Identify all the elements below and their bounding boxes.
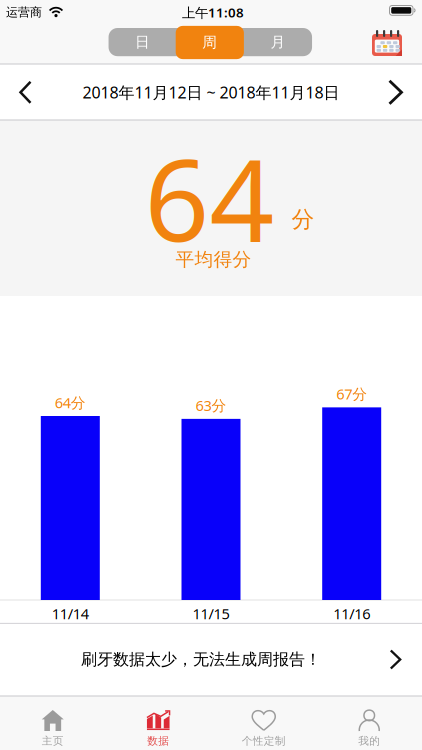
staticText: 周 — [202, 33, 217, 51]
button[interactable]: 日 — [109, 28, 176, 56]
staticText: 月 — [270, 33, 285, 51]
staticText: 数据 — [147, 734, 169, 747]
staticText: 我的 — [358, 734, 380, 747]
staticText: 主页 — [42, 734, 64, 747]
button[interactable]: 选择日期 — [372, 30, 402, 56]
staticText: 平均得分 — [175, 248, 251, 271]
button[interactable]: 我的 — [316, 697, 422, 750]
staticText: 67分 — [336, 384, 367, 404]
staticText: 64 — [144, 122, 274, 273]
staticText: 个性定制 — [242, 734, 286, 747]
staticText: 上午11:08 — [182, 3, 244, 21]
staticText: 刷牙数据太少，无法生成周报告！ — [81, 650, 321, 669]
staticText: 11/14 — [52, 604, 89, 623]
staticText: 11/16 — [333, 604, 370, 623]
staticText: 11/15 — [192, 604, 229, 623]
staticText: 2018年11月12日 ~ 2018年11月18日 — [82, 82, 339, 103]
staticText: 64分 — [55, 393, 86, 412]
button[interactable]: 上一周 — [14, 76, 36, 109]
button[interactable]: 月 — [244, 28, 311, 56]
button[interactable]: 刷牙数据太少，无法生成周报告！ — [0, 624, 422, 695]
button[interactable]: 周 — [176, 26, 244, 59]
button[interactable]: 下一周 — [383, 75, 407, 110]
button[interactable]: 数据 — [105, 697, 211, 750]
staticText: 63分 — [195, 396, 226, 415]
button[interactable]: 主页 — [0, 697, 105, 750]
button[interactable]: 个性定制 — [211, 697, 316, 750]
staticText: 分 — [291, 206, 314, 233]
staticText: 运营商 — [6, 5, 42, 19]
staticText: 日 — [135, 33, 150, 51]
